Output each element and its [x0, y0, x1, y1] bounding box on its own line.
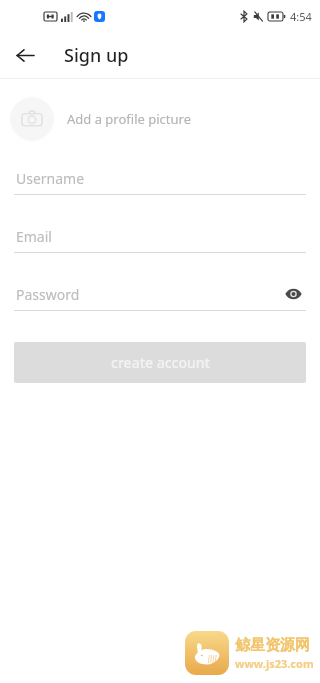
button[interactable]: create account	[14, 342, 306, 383]
button[interactable]: Email	[14, 225, 306, 253]
staticText: Add a profile picture	[67, 110, 191, 128]
staticText: 4:54	[290, 9, 312, 24]
staticText: 鲸星资源网	[235, 636, 310, 655]
button[interactable]: Password	[14, 283, 306, 311]
staticText: Sign up	[64, 43, 129, 68]
button[interactable]: Back	[8, 38, 42, 72]
staticText: Email	[16, 227, 52, 246]
button[interactable]: Username	[14, 167, 306, 195]
staticText: create account	[111, 353, 210, 372]
button[interactable]: Show password	[280, 283, 306, 305]
staticText: www.js23.com	[235, 656, 314, 671]
staticText: Password	[16, 285, 80, 304]
staticText: Username	[16, 169, 85, 188]
button[interactable]: Add a profile picture	[10, 93, 310, 145]
